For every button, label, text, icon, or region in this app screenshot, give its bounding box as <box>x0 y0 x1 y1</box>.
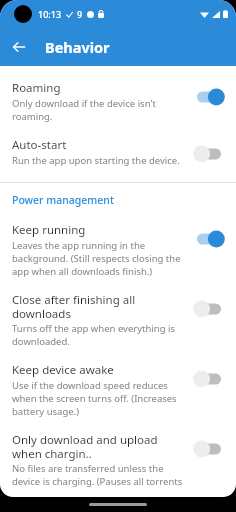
staticText: Turns off the app when everything is dow… <box>12 322 186 348</box>
staticText: Only download if the device isn't roamin… <box>12 97 186 123</box>
button[interactable]: Off <box>192 438 226 460</box>
staticText: Run the app upon starting the device. <box>12 154 180 167</box>
button[interactable]: Auto-start <box>0 132 236 176</box>
staticText: Leaves the app running in the background… <box>12 239 186 278</box>
staticText: Keep device awake <box>12 362 114 378</box>
button[interactable]: Back <box>7 35 31 59</box>
button[interactable]: Roaming <box>0 75 236 132</box>
button[interactable]: Off <box>192 143 226 165</box>
staticText: Behavior <box>45 37 110 57</box>
staticText: 10:13 <box>38 8 62 20</box>
staticText: 9 <box>77 8 83 20</box>
button[interactable]: Keep running <box>0 217 236 287</box>
button[interactable]: Close after finishing all downloads <box>0 287 236 357</box>
staticText: Use if the download speed reduces when t… <box>12 379 186 418</box>
button[interactable]: On <box>192 228 226 250</box>
button[interactable]: Off <box>192 298 226 320</box>
button[interactable]: Only download and upload when chargin.. <box>0 427 236 497</box>
staticText: Keep running <box>12 222 86 238</box>
staticText: Roaming <box>12 80 61 96</box>
staticText: Power management <box>12 193 114 207</box>
staticText: Close after finishing all downloads <box>12 292 186 321</box>
staticText: Only download and upload when chargin.. <box>12 432 186 461</box>
staticText: No files are transferred unless the devi… <box>12 462 186 488</box>
button[interactable]: Off <box>192 368 226 390</box>
button[interactable]: Keep device awake <box>0 357 236 427</box>
staticText: Auto-start <box>12 137 67 153</box>
button[interactable]: On <box>192 86 226 108</box>
